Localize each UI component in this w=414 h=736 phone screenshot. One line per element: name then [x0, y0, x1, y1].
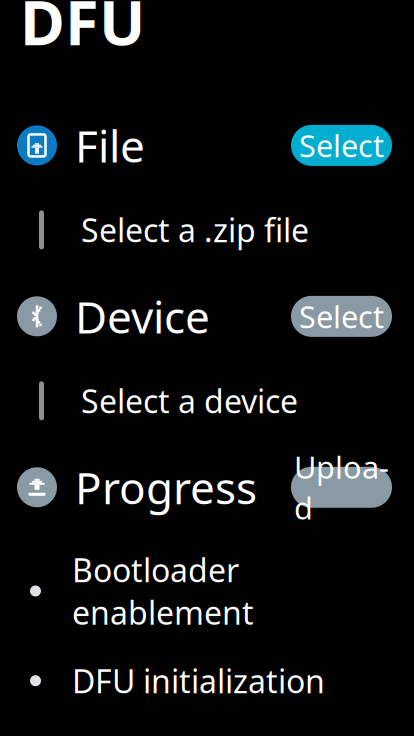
- staticText: File: [75, 116, 145, 175]
- staticText: Select: [299, 125, 384, 166]
- staticText: Upload: [294, 446, 389, 528]
- staticText: Select: [299, 296, 384, 337]
- staticText: DFU: [20, 0, 145, 62]
- staticText: Bootloader enablement: [72, 548, 254, 633]
- staticText: DFU initialization: [72, 659, 325, 702]
- staticText: Select a .zip file: [81, 209, 309, 251]
- staticText: Device: [75, 287, 210, 345]
- button[interactable]: Upload: [291, 467, 392, 508]
- button[interactable]: Select: [291, 296, 392, 337]
- staticText: Select a device: [81, 380, 298, 422]
- button[interactable]: Select: [291, 125, 392, 166]
- staticText: Progress: [75, 458, 257, 516]
